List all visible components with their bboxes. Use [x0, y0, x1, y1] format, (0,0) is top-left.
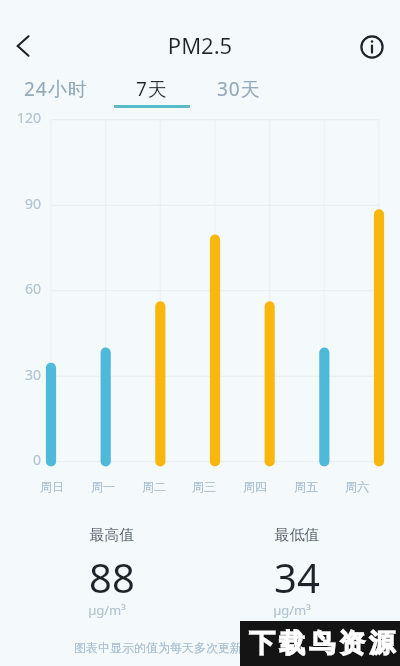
button[interactable]: 最高值 — [42, 518, 182, 622]
button[interactable]: 30天 — [201, 70, 277, 108]
staticText: 34 — [227, 550, 367, 604]
staticText: 最低值 — [227, 526, 367, 545]
staticText: 最高值 — [42, 526, 182, 545]
staticText: 24小时 — [24, 76, 88, 102]
staticText: 下载鸟资源 — [247, 627, 397, 660]
button[interactable]: Info — [348, 23, 395, 70]
staticText: 120 — [17, 108, 42, 127]
button[interactable]: 7天 — [114, 70, 190, 108]
staticText: 30 — [25, 365, 42, 384]
staticText: 88 — [42, 550, 182, 604]
staticText: µg/m³ — [222, 601, 362, 619]
staticText: 周日 — [40, 479, 64, 494]
button[interactable]: Back — [0, 23, 46, 69]
staticText: PM2.5 — [0, 30, 400, 60]
staticText: 周六 — [345, 479, 369, 494]
staticText: 0 — [33, 450, 42, 469]
staticText: 周五 — [294, 479, 318, 494]
staticText: 周四 — [243, 479, 267, 494]
staticText: 30天 — [217, 76, 261, 102]
staticText: 7天 — [136, 76, 168, 102]
staticText: µg/m³ — [37, 601, 177, 619]
button[interactable]: 最低值 — [227, 518, 367, 622]
staticText: 周一 — [91, 479, 115, 494]
staticText: 周二 — [142, 479, 166, 494]
staticText: 90 — [25, 194, 42, 213]
staticText: 图表中显示的值为每天多次更新后得出的平均值 — [0, 640, 400, 655]
staticText: 周三 — [192, 479, 216, 494]
staticText: 60 — [25, 279, 42, 298]
button[interactable]: 24小时 — [18, 70, 94, 108]
